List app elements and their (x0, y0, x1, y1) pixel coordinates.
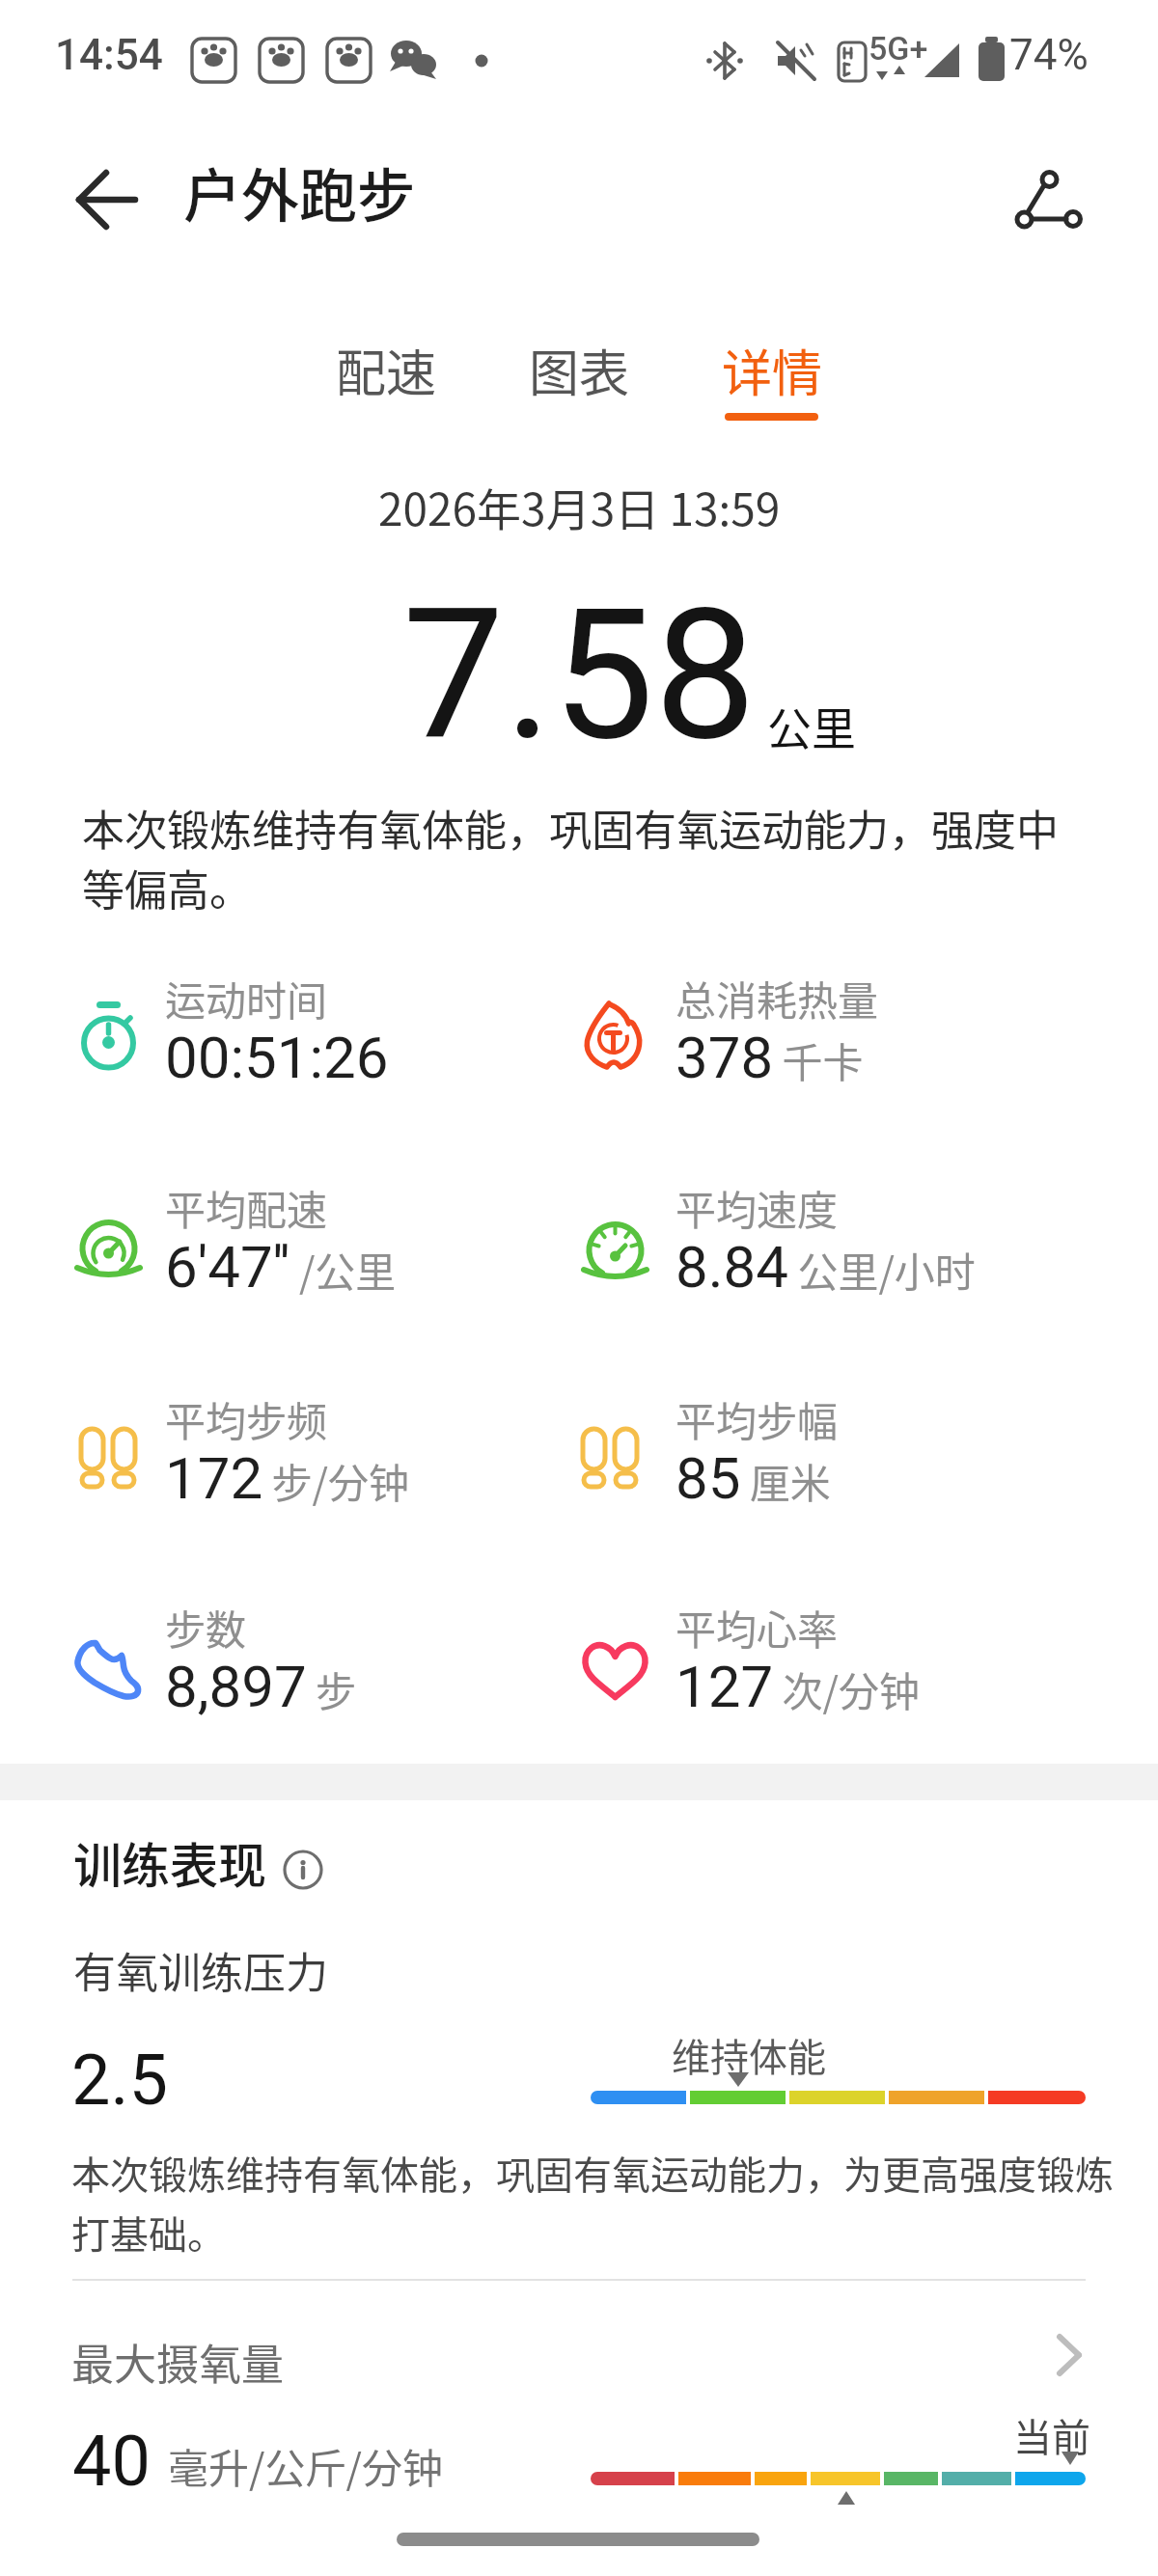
staticText: 平均配速 (165, 1178, 328, 1237)
button[interactable] (281, 1848, 325, 1892)
staticText: 平均心率 (675, 1598, 839, 1657)
button[interactable]: 配速 (309, 334, 463, 405)
staticText: 本次锻炼维持有氧体能，巩固有氧运动能力，为更高强度锻炼 打基础。 (71, 2145, 1114, 2260)
staticText: 14:54 (55, 30, 163, 80)
button[interactable] (64, 164, 151, 241)
staticText: 40 (72, 2421, 151, 2502)
button[interactable]: 详情 (695, 334, 849, 405)
staticText: 8.84 公里/小时 (675, 1233, 976, 1301)
staticText: 当前 (1013, 2407, 1090, 2463)
staticText: 配速 (336, 334, 437, 405)
staticText: 5G+ (868, 29, 928, 68)
staticText: 详情 (722, 334, 823, 405)
staticText: 运动时间 (165, 969, 328, 1028)
button[interactable]: 最大摄氧量 (0, 2306, 1158, 2402)
staticText: 户外跑步 (183, 150, 415, 233)
staticText: 总消耗热量 (675, 969, 879, 1028)
staticText: 毫升/公斤/分钟 (168, 2436, 443, 2495)
staticText: 127 次/分钟 (675, 1653, 921, 1720)
staticText: 00:51:26 (165, 1024, 389, 1091)
staticText: 378 千卡 (675, 1024, 864, 1091)
staticText: 公里 (767, 694, 856, 758)
staticText: 最大摄氧量 (71, 2331, 284, 2393)
button[interactable] (1004, 159, 1095, 241)
staticText: 有氧训练压力 (73, 1939, 328, 2001)
staticText: 平均步频 (165, 1389, 328, 1448)
staticText: 85 厘米 (675, 1444, 831, 1512)
staticText: 172 步/分钟 (165, 1444, 410, 1512)
staticText: 本次锻炼维持有氧体能，巩固有氧运动能力，强度中 等偏高。 (82, 797, 1059, 918)
staticText: 74% (1009, 30, 1089, 80)
staticText: 8,897 步 (165, 1653, 357, 1720)
staticText: 2.5 (71, 2040, 168, 2121)
staticText: 图表 (529, 334, 630, 405)
staticText: 平均步幅 (675, 1389, 839, 1448)
staticText: 步数 (165, 1598, 247, 1657)
staticText: 训练表现 (73, 1827, 266, 1897)
staticText: 7.58 (402, 569, 757, 781)
staticText: 维持体能 (672, 2027, 826, 2083)
staticText: 2026年3月3日 13:59 (378, 475, 781, 539)
button[interactable]: 图表 (502, 334, 656, 405)
staticText: 6'47'' /公里 (165, 1233, 397, 1301)
staticText: 平均速度 (675, 1178, 839, 1237)
